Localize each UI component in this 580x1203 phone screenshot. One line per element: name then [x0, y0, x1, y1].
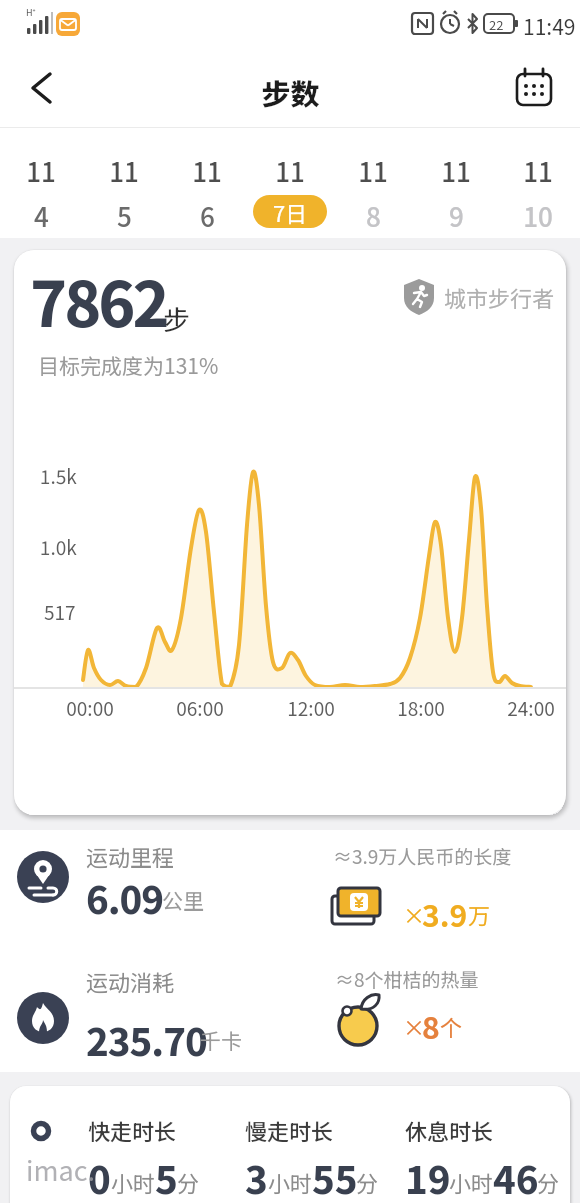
staticText: 分: [537, 1166, 560, 1198]
staticText: 3: [245, 1150, 268, 1203]
staticText: 3.9: [422, 892, 468, 935]
button[interactable]: [415, 140, 497, 236]
button[interactable]: [83, 140, 165, 236]
staticText: 46: [493, 1150, 539, 1203]
staticText: 11: [192, 152, 222, 190]
staticText: 城市步行者: [444, 281, 555, 313]
staticText: 运动里程: [86, 840, 175, 872]
staticText: ≈8个柑桔的热量: [335, 965, 479, 993]
staticText: 235.70: [86, 1012, 207, 1067]
staticText: 目标完成度为131%: [38, 350, 219, 380]
staticText: 7862: [30, 255, 167, 345]
staticText: 小时: [449, 1166, 494, 1198]
staticText: 00:00: [66, 694, 114, 722]
staticText: 11: [109, 152, 139, 190]
staticText: 快走时长: [88, 1114, 177, 1146]
staticText: 公里: [162, 885, 204, 915]
staticText: 步数: [261, 71, 320, 113]
staticText: 步: [163, 299, 190, 338]
staticText: 19: [405, 1150, 451, 1203]
staticText: 分: [356, 1166, 379, 1198]
staticText: 0: [88, 1150, 111, 1203]
staticText: imac.: [26, 1150, 95, 1189]
staticText: 9: [449, 197, 464, 235]
staticText: 10: [523, 197, 553, 235]
staticText: 小时: [111, 1166, 156, 1198]
staticText: ≈3.9万人民币的长度: [333, 842, 512, 870]
staticText: 11:49: [523, 11, 576, 41]
staticText: 11: [358, 152, 388, 190]
staticText: 8: [422, 1004, 440, 1047]
staticText: 517: [44, 598, 76, 626]
staticText: 7日: [273, 196, 308, 228]
staticText: 分: [177, 1166, 200, 1198]
button[interactable]: [0, 964, 580, 1072]
button[interactable]: [235, 1106, 395, 1201]
button[interactable]: [395, 1106, 555, 1201]
staticText: 小时: [268, 1166, 313, 1198]
button[interactable]: [166, 140, 248, 236]
staticText: 11: [441, 152, 471, 190]
button[interactable]: [24, 68, 64, 108]
staticText: H⁺: [26, 6, 36, 19]
staticText: 万: [468, 898, 491, 930]
staticText: 5: [155, 1150, 178, 1203]
staticText: 6.09: [86, 870, 164, 925]
staticText: 个: [440, 1010, 463, 1042]
button[interactable]: [497, 140, 579, 236]
button[interactable]: [0, 836, 580, 948]
button[interactable]: [512, 66, 556, 110]
button[interactable]: [20, 1106, 190, 1201]
staticText: 11: [26, 152, 56, 190]
staticText: 55: [312, 1150, 358, 1203]
staticText: 18:00: [397, 694, 445, 722]
button[interactable]: 城市步行者: [402, 278, 555, 316]
button[interactable]: 7日: [253, 195, 327, 228]
button[interactable]: [249, 140, 331, 236]
button[interactable]: [0, 140, 82, 236]
staticText: ×: [403, 1010, 426, 1042]
staticText: 22: [489, 15, 504, 34]
staticText: 慢走时长: [245, 1114, 334, 1146]
staticText: 1.5k: [40, 462, 77, 490]
staticText: 运动消耗: [86, 965, 175, 997]
staticText: 千卡: [200, 1025, 242, 1055]
button[interactable]: [332, 140, 414, 236]
staticText: 11: [523, 152, 553, 190]
staticText: ×: [403, 898, 426, 930]
staticText: 休息时长: [405, 1114, 494, 1146]
staticText: 4: [34, 197, 49, 235]
staticText: 1.0k: [40, 533, 77, 561]
staticText: 06:00: [176, 694, 224, 722]
staticText: 8: [366, 197, 381, 235]
staticText: 5: [117, 197, 132, 235]
staticText: 24:00: [507, 694, 555, 722]
staticText: 12:00: [287, 694, 335, 722]
staticText: 11: [275, 152, 305, 190]
staticText: 6: [200, 197, 215, 235]
